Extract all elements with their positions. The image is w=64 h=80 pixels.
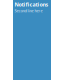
staticText: Second line here <box>14 8 42 13</box>
staticText: Notifications <box>14 1 48 8</box>
